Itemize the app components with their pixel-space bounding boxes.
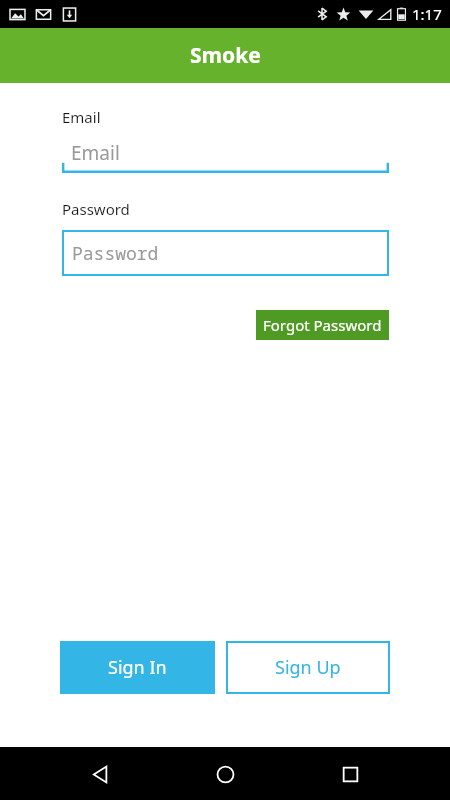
staticText: Smoke [190, 41, 261, 70]
button[interactable]: Sign Up [226, 641, 390, 694]
staticText: Email [62, 107, 101, 127]
staticText: Sign Up [275, 655, 341, 680]
button[interactable]: Recent apps [325, 749, 375, 799]
staticText: Password [62, 199, 130, 219]
button[interactable]: Back [75, 749, 125, 799]
button[interactable]: Home [200, 749, 250, 799]
staticText: Forgot Password [263, 315, 382, 335]
staticText: Sign In [108, 655, 167, 680]
button[interactable]: Password [62, 230, 389, 276]
staticText: 1:17 [412, 4, 442, 24]
button[interactable]: Sign In [60, 641, 215, 694]
button[interactable]: Forgot Password [256, 310, 389, 340]
staticText: Email [71, 140, 120, 166]
button[interactable]: Email [62, 140, 389, 173]
staticText: Password [72, 241, 159, 266]
